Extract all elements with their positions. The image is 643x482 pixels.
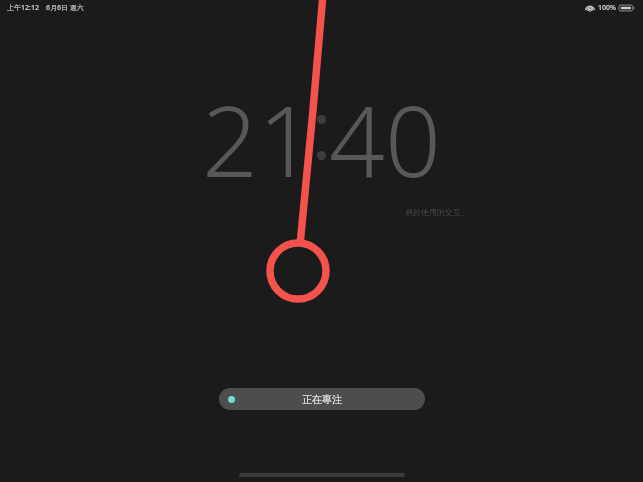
staticText: 100% (598, 3, 616, 13)
other: Battery full (619, 4, 635, 12)
staticText: 易於使用的交互。 (405, 207, 469, 217)
staticText: 上午12:12 (7, 3, 39, 13)
other: Wi-Fi (585, 4, 595, 12)
staticText: 6月6日 週六 (46, 3, 84, 13)
staticText: 40 (329, 72, 441, 205)
staticText: 21 (202, 72, 314, 205)
button[interactable]: 正在專注 (219, 388, 425, 410)
staticText: 正在專注 (302, 393, 342, 406)
